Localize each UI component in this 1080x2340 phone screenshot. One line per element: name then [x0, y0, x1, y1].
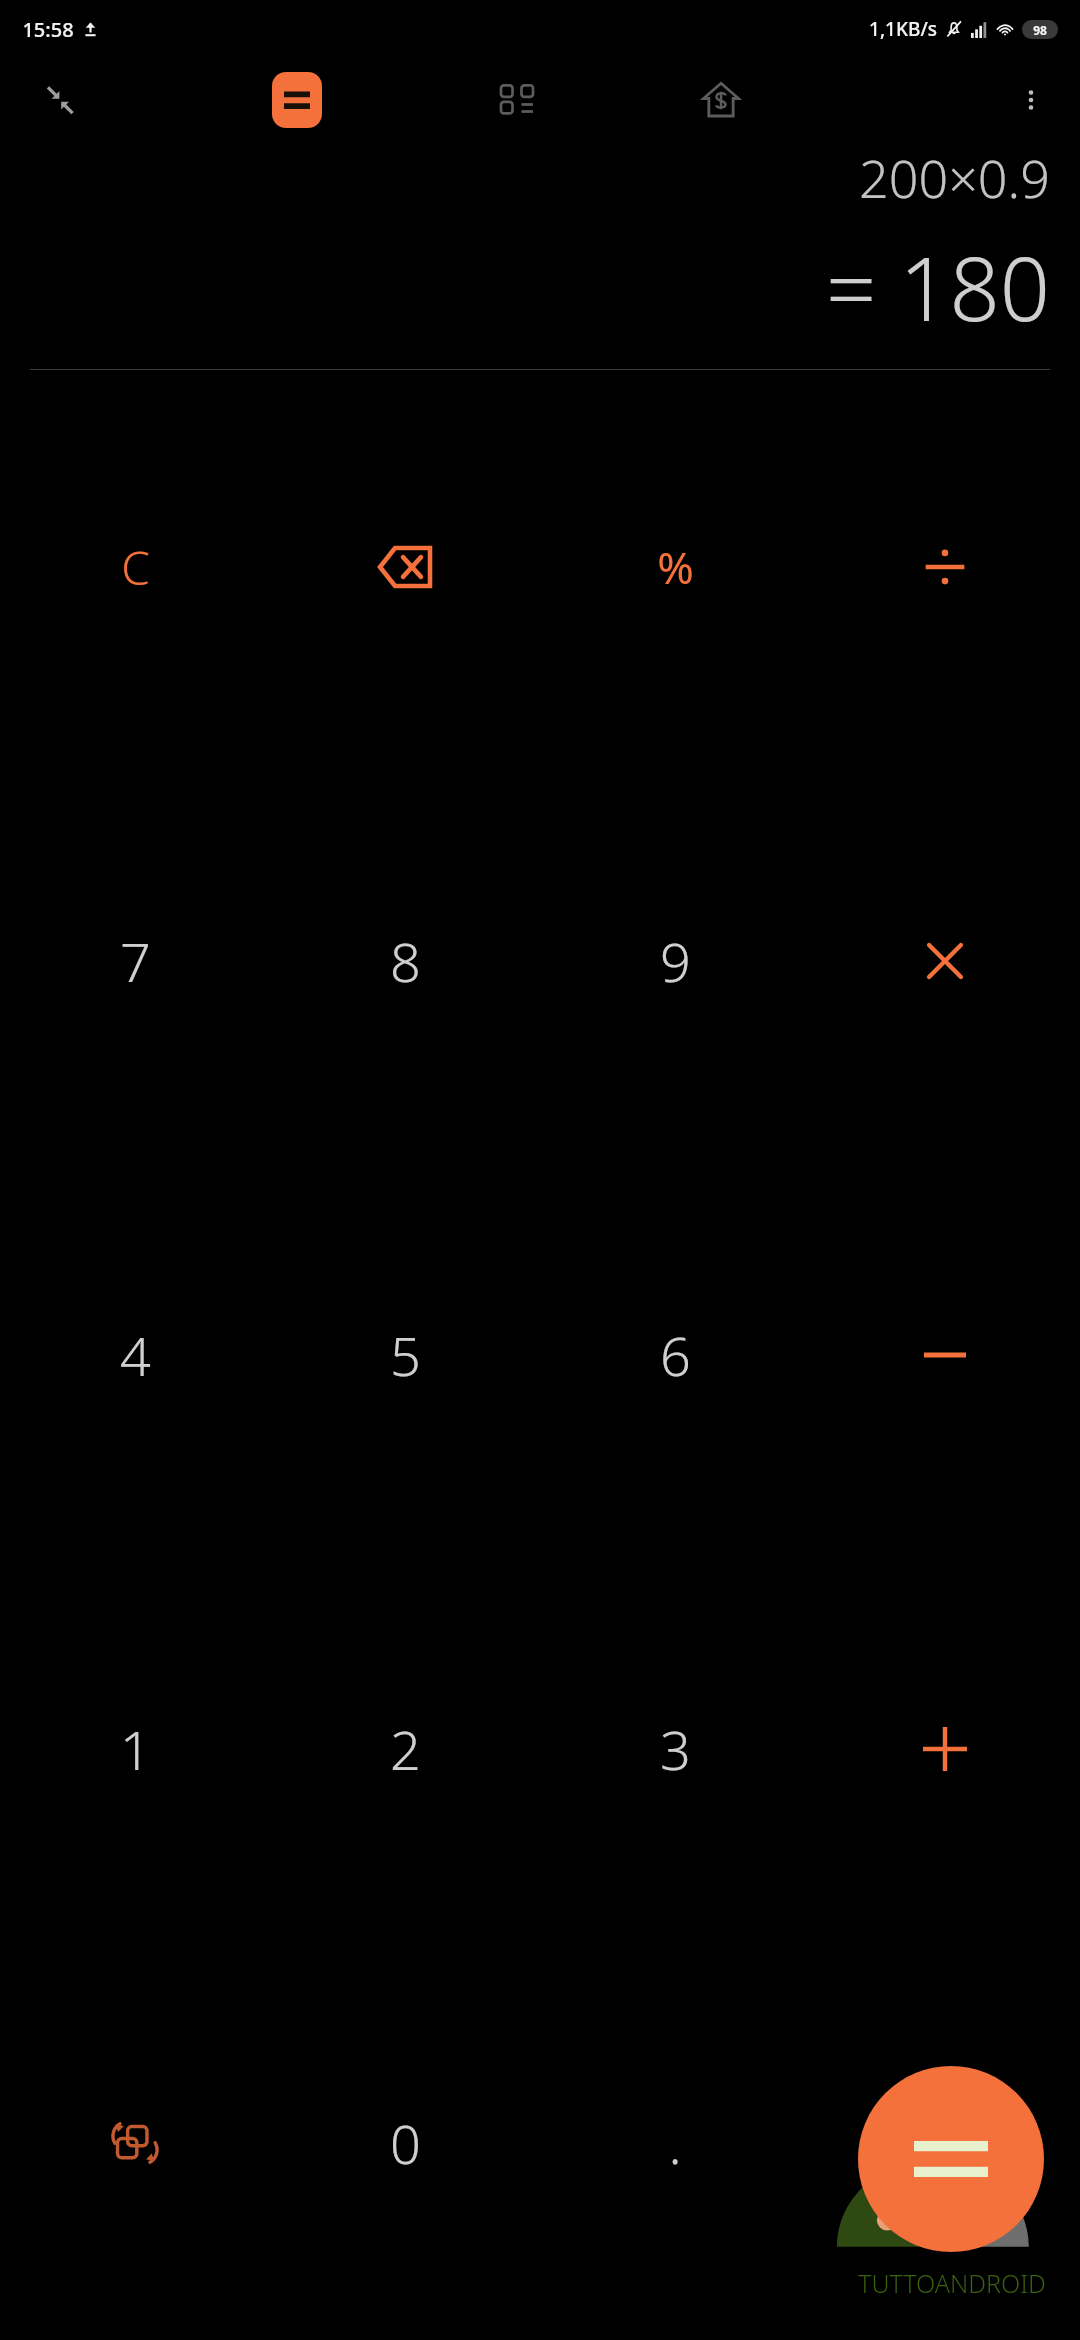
staticText: TUTTOANDROID [858, 2266, 1046, 2300]
staticText: 0 [390, 2106, 421, 2180]
staticText: 2 [390, 1712, 421, 1786]
button[interactable]: Equals [858, 2066, 1044, 2252]
staticText: 200×0.9 [859, 142, 1050, 213]
staticText: 15:58 [22, 16, 74, 43]
staticText: = 180 [826, 227, 1050, 347]
staticText: 1 [120, 1712, 151, 1786]
other: Divide [923, 545, 967, 589]
staticText: 1,1KB/s [869, 16, 937, 42]
button[interactable]: 2 [270, 1552, 540, 1946]
other: Backspace [380, 548, 430, 586]
button[interactable] [810, 1946, 1080, 2340]
button[interactable]: 4 [0, 1158, 270, 1552]
button[interactable]: Convert [0, 1946, 270, 2340]
button[interactable]: 1 [0, 1552, 270, 1946]
button[interactable]: Calculator [272, 72, 322, 128]
staticText: 7 [120, 924, 151, 998]
button[interactable]: 8 [270, 764, 540, 1158]
staticText: 5 [390, 1318, 421, 1392]
button[interactable]: Backspace [270, 370, 540, 764]
staticText: 9 [660, 924, 691, 998]
staticText: 98 [1033, 22, 1047, 38]
button[interactable]: 0 [270, 1946, 540, 2340]
button[interactable]: 6 [540, 1158, 810, 1552]
button[interactable]: Mortgage [690, 69, 752, 131]
staticText: 6 [660, 1318, 691, 1392]
other: Plus [923, 1727, 967, 1771]
other: Multiply [926, 942, 964, 980]
button[interactable]: 3 [540, 1552, 810, 1946]
other: Convert [112, 2120, 158, 2166]
button[interactable]: % [540, 370, 810, 764]
button[interactable]: 9 [540, 764, 810, 1158]
other: Clear [121, 536, 150, 599]
other: Minus [924, 1343, 966, 1367]
staticText: 8 [390, 924, 421, 998]
button[interactable]: 7 [0, 764, 270, 1158]
button[interactable]: Plus [810, 1552, 1080, 1946]
button[interactable]: Collapse [34, 74, 86, 126]
button[interactable]: More options [1004, 73, 1058, 127]
button[interactable]: Multiply [810, 764, 1080, 1158]
button[interactable]: Clear [0, 370, 270, 764]
button[interactable]: 5 [270, 1158, 540, 1552]
button[interactable]: Minus [810, 1158, 1080, 1552]
staticText: % [657, 537, 694, 597]
staticText: . [668, 2106, 682, 2180]
button[interactable]: Divide [810, 370, 1080, 764]
button[interactable]: Unit converter [488, 71, 546, 129]
staticText: 3 [660, 1712, 691, 1786]
staticText: C [121, 536, 150, 599]
staticText: 4 [120, 1318, 151, 1392]
